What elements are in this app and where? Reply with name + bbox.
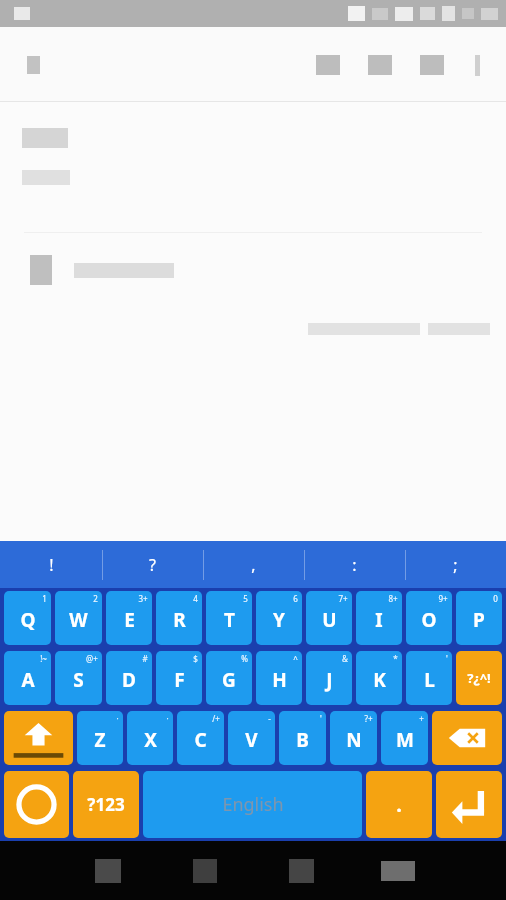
- staticText: K: [373, 667, 386, 693]
- staticText: 4: [193, 593, 198, 604]
- button[interactable]: Shift: [4, 711, 73, 765]
- staticText: -: [268, 713, 271, 724]
- staticText: 1: [42, 593, 47, 604]
- button[interactable]: Attach: [302, 41, 354, 89]
- staticText: +: [419, 713, 424, 724]
- button[interactable]: ?¿^!: [456, 651, 502, 705]
- button[interactable]: 9+: [406, 591, 452, 645]
- button[interactable]: /+: [177, 711, 224, 765]
- button[interactable]: ^: [256, 651, 302, 705]
- staticText: @+: [86, 653, 98, 664]
- button[interactable]: Keyboard switcher: [369, 842, 427, 900]
- staticText: D: [122, 667, 136, 693]
- staticText: ': [446, 653, 448, 664]
- button[interactable]: !~: [4, 651, 51, 705]
- staticText: ,: [251, 554, 256, 576]
- button[interactable]: ': [279, 711, 326, 765]
- button[interactable]: ?+: [330, 711, 377, 765]
- button[interactable]: ,: [203, 541, 304, 588]
- staticText: T: [224, 607, 235, 633]
- staticText: 2: [93, 593, 98, 604]
- button[interactable]: English: [143, 771, 362, 838]
- button[interactable]: &: [306, 651, 352, 705]
- staticText: /+: [212, 713, 220, 724]
- staticText: X: [144, 727, 157, 753]
- staticText: ?123: [87, 793, 125, 816]
- staticText: :: [352, 554, 357, 576]
- staticText: F: [174, 667, 185, 693]
- button[interactable]: 0: [456, 591, 502, 645]
- button[interactable]: ·: [127, 711, 173, 765]
- button[interactable]: 6: [256, 591, 302, 645]
- staticText: !: [49, 554, 54, 576]
- button[interactable]: *: [356, 651, 402, 705]
- staticText: ?+: [364, 713, 373, 724]
- staticText: M: [396, 727, 414, 753]
- button[interactable]: ?123: [73, 771, 139, 838]
- staticText: B: [296, 727, 309, 753]
- staticText: *: [393, 653, 398, 664]
- button[interactable]: Copy: [354, 41, 406, 89]
- button[interactable]: 4: [156, 591, 202, 645]
- staticText: 5: [243, 593, 248, 604]
- button[interactable]: $: [156, 651, 202, 705]
- staticText: C: [194, 727, 207, 753]
- staticText: ': [320, 713, 322, 724]
- button[interactable]: Navigate up: [16, 48, 50, 82]
- button[interactable]: .: [366, 771, 432, 838]
- button[interactable]: Archive: [406, 41, 458, 89]
- staticText: O: [421, 607, 437, 633]
- button[interactable]: 7+: [306, 591, 352, 645]
- button[interactable]: 1: [4, 591, 51, 645]
- staticText: E: [124, 607, 135, 633]
- staticText: W: [69, 607, 88, 633]
- button[interactable]: ;: [405, 541, 506, 588]
- button[interactable]: +: [381, 711, 428, 765]
- button[interactable]: -: [228, 711, 275, 765]
- staticText: 9+: [438, 593, 448, 604]
- button[interactable]: @+: [55, 651, 102, 705]
- button[interactable]: #: [106, 651, 152, 705]
- button[interactable]: Back: [79, 842, 137, 900]
- button[interactable]: Recents: [272, 842, 330, 900]
- staticText: 6: [293, 593, 298, 604]
- staticText: A: [21, 667, 35, 693]
- staticText: ·: [116, 713, 119, 724]
- staticText: 0: [493, 593, 498, 604]
- staticText: #: [142, 653, 148, 664]
- button[interactable]: Voice input: [4, 771, 69, 838]
- staticText: ;: [453, 554, 458, 576]
- staticText: Q: [20, 607, 36, 633]
- button[interactable]: ·: [77, 711, 123, 765]
- button[interactable]: 3+: [106, 591, 152, 645]
- staticText: .: [396, 791, 402, 818]
- staticText: 7+: [338, 593, 348, 604]
- staticText: U: [322, 607, 337, 633]
- button[interactable]: ': [406, 651, 452, 705]
- staticText: ?¿^!: [467, 669, 491, 687]
- button[interactable]: :: [304, 541, 405, 588]
- button[interactable]: 8+: [356, 591, 402, 645]
- button[interactable]: Enter: [436, 771, 502, 838]
- staticText: %: [241, 653, 248, 664]
- button[interactable]: Home: [176, 842, 234, 900]
- button[interactable]: Delete: [432, 711, 502, 765]
- staticText: J: [326, 667, 333, 693]
- staticText: $: [193, 653, 198, 664]
- button[interactable]: More options: [458, 41, 496, 89]
- staticText: L: [424, 667, 435, 693]
- button[interactable]: 2: [55, 591, 102, 645]
- staticText: English: [222, 792, 284, 817]
- button[interactable]: ?: [102, 541, 203, 588]
- button[interactable]: 5: [206, 591, 252, 645]
- staticText: P: [473, 607, 485, 633]
- staticText: S: [73, 667, 84, 693]
- button[interactable]: !: [0, 541, 102, 588]
- staticText: !~: [40, 653, 47, 664]
- staticText: R: [173, 607, 186, 633]
- button[interactable]: %: [206, 651, 252, 705]
- staticText: ·: [166, 713, 169, 724]
- staticText: Z: [94, 727, 106, 753]
- staticText: G: [222, 667, 236, 693]
- staticText: H: [272, 667, 287, 693]
